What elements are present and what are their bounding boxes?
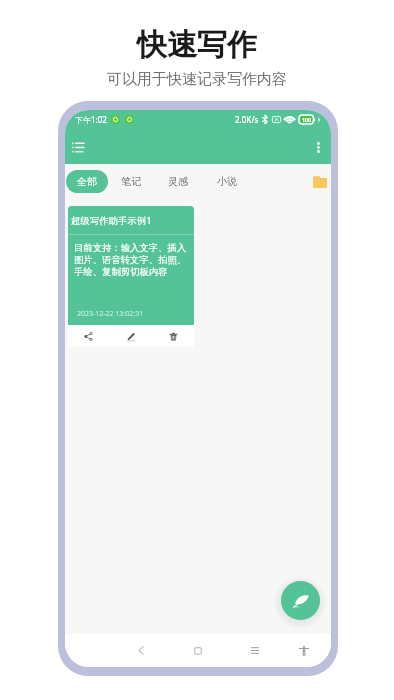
button[interactable]: New note bbox=[281, 581, 320, 620]
staticText: 超级写作助手示例1 bbox=[71, 214, 152, 227]
button[interactable]: Folders bbox=[311, 173, 329, 191]
button[interactable]: 笔记 bbox=[120, 172, 143, 191]
staticText: 全部 bbox=[77, 175, 97, 188]
staticText: 小说 bbox=[217, 175, 238, 188]
button[interactable]: More options bbox=[307, 136, 329, 158]
button[interactable]: Edit bbox=[117, 325, 145, 347]
button[interactable]: Accessibility bbox=[291, 634, 317, 667]
button[interactable]: 超级写作助手示例1 bbox=[68, 206, 194, 347]
button[interactable]: 小说 bbox=[216, 172, 239, 191]
staticText: 可以用于快速记录写作内容 bbox=[0, 70, 394, 89]
staticText: 笔记 bbox=[121, 175, 142, 188]
button[interactable]: Delete bbox=[159, 325, 187, 347]
button[interactable]: Home bbox=[185, 634, 211, 667]
staticText: 快速写作 bbox=[0, 26, 394, 64]
button[interactable]: Share bbox=[74, 325, 102, 347]
staticText: 100 bbox=[302, 116, 311, 123]
button[interactable]: Back bbox=[128, 634, 154, 667]
button[interactable]: Recents bbox=[242, 634, 268, 667]
staticText: 目前支持：输入文字、插入图片、语音转文字、拍照、手绘、复制剪切板内容 bbox=[74, 242, 190, 278]
staticText: 下午1:02 bbox=[75, 114, 107, 125]
staticText: 2023-12-22 13:02:31 bbox=[77, 309, 144, 319]
button[interactable]: 灵感 bbox=[167, 172, 190, 191]
staticText: 2.0K/s bbox=[235, 114, 259, 125]
button[interactable]: 全部 bbox=[66, 170, 108, 193]
button[interactable]: Menu bbox=[67, 136, 89, 158]
staticText: 灵感 bbox=[168, 175, 189, 188]
